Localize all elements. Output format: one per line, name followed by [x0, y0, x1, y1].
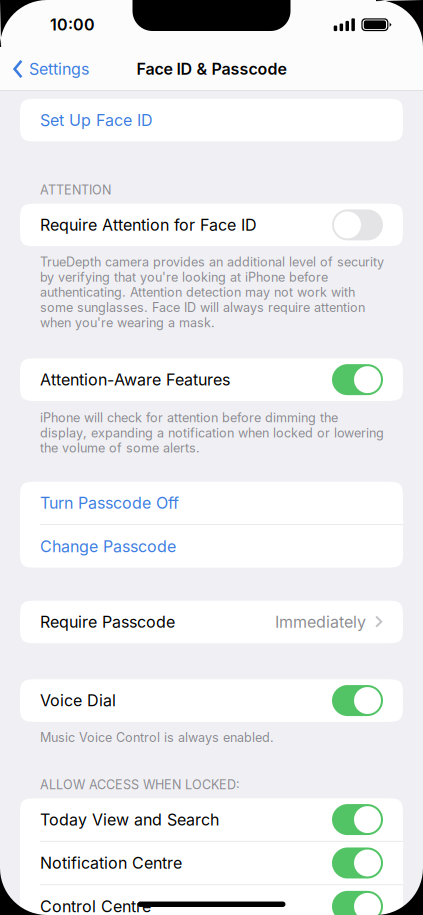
- staticText: ATTENTION: [40, 182, 111, 198]
- button[interactable]: Attention-Aware Features: [20, 358, 403, 401]
- staticText: Require Passcode: [40, 612, 175, 632]
- button[interactable]: Control Centre: [20, 885, 403, 915]
- staticText: Music Voice Control is always enabled.: [40, 730, 274, 745]
- staticText: TrueDepth camera provides an additional …: [40, 254, 384, 330]
- staticText: 10:00: [50, 15, 95, 34]
- staticText: Change Passcode: [40, 537, 176, 556]
- button[interactable]: Today View and Search: [20, 798, 403, 841]
- button[interactable]: Change Passcode: [20, 525, 403, 568]
- button[interactable]: Notification Centre: [20, 842, 403, 884]
- button[interactable]: Turn Passcode Off: [20, 482, 403, 524]
- button[interactable]: Require Passcode: [20, 601, 403, 643]
- button[interactable]: Settings: [0, 48, 97, 90]
- staticText: Immediately: [275, 612, 366, 632]
- staticText: Settings: [29, 59, 89, 79]
- staticText: Voice Dial: [40, 691, 116, 710]
- staticText: Notification Centre: [40, 853, 182, 873]
- button[interactable]: Voice Dial: [20, 679, 403, 722]
- button[interactable]: Require Attention for Face ID: [20, 204, 403, 246]
- staticText: Face ID & Passcode: [136, 59, 286, 79]
- button[interactable]: Set Up Face ID: [20, 99, 403, 141]
- staticText: Set Up Face ID: [40, 110, 153, 130]
- staticText: ALLOW ACCESS WHEN LOCKED:: [40, 777, 240, 792]
- staticText: Control Centre: [40, 897, 151, 915]
- staticText: Today View and Search: [40, 810, 219, 829]
- staticText: iPhone will check for attention before d…: [40, 410, 384, 456]
- staticText: Require Attention for Face ID: [40, 215, 257, 235]
- staticText: Turn Passcode Off: [40, 493, 179, 513]
- staticText: Attention-Aware Features: [40, 370, 230, 389]
